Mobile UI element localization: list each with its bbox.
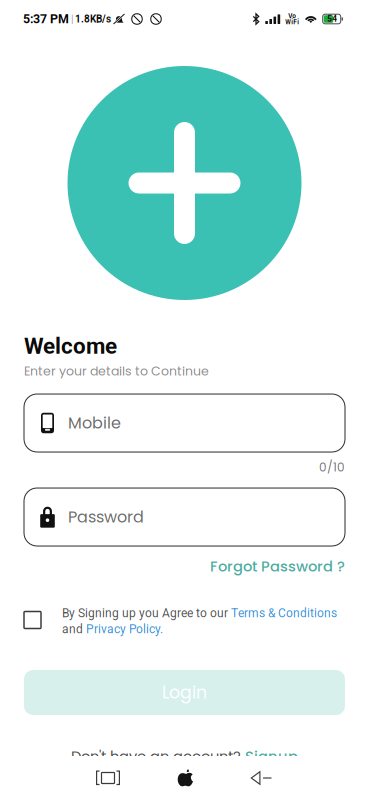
staticText: and <box>62 622 86 636</box>
staticText: By Signing up you Agree to our <box>62 606 231 620</box>
staticText: 1.8KB/s <box>75 13 111 25</box>
button[interactable]: Login <box>24 670 345 715</box>
button[interactable]: Forgot Password ? <box>210 556 345 576</box>
staticText: Terms & Conditions <box>231 606 337 620</box>
button[interactable]: Privacy Policy. <box>86 622 163 636</box>
staticText: 54 <box>327 14 337 24</box>
staticText: Welcome <box>24 333 117 359</box>
button[interactable]: Home <box>158 756 212 800</box>
button[interactable]: Back <box>234 756 288 800</box>
staticText: Enter your details to Continue <box>24 362 209 380</box>
staticText: Mobile <box>68 412 121 434</box>
button[interactable]: Recent apps <box>81 756 135 800</box>
button[interactable]: Signup <box>245 746 298 766</box>
staticText: 5:37 PM <box>23 12 69 26</box>
staticText: 0/10 <box>319 459 345 476</box>
staticText: Signup <box>245 746 298 766</box>
staticText: Forgot Password ? <box>210 556 345 576</box>
button[interactable]: Terms & Conditions <box>231 606 337 620</box>
staticText: Vo <box>288 12 296 20</box>
staticText: Don't have an account? <box>71 746 245 766</box>
staticText: WiFi <box>285 18 299 26</box>
staticText: Password <box>68 506 144 528</box>
button[interactable]: Password <box>24 488 345 546</box>
staticText: Login <box>162 680 207 705</box>
button[interactable]: Agree to Terms and Conditions <box>24 606 41 623</box>
button[interactable]: Mobile <box>24 394 345 452</box>
staticText: | <box>69 13 75 25</box>
staticText: Privacy Policy. <box>86 622 163 636</box>
